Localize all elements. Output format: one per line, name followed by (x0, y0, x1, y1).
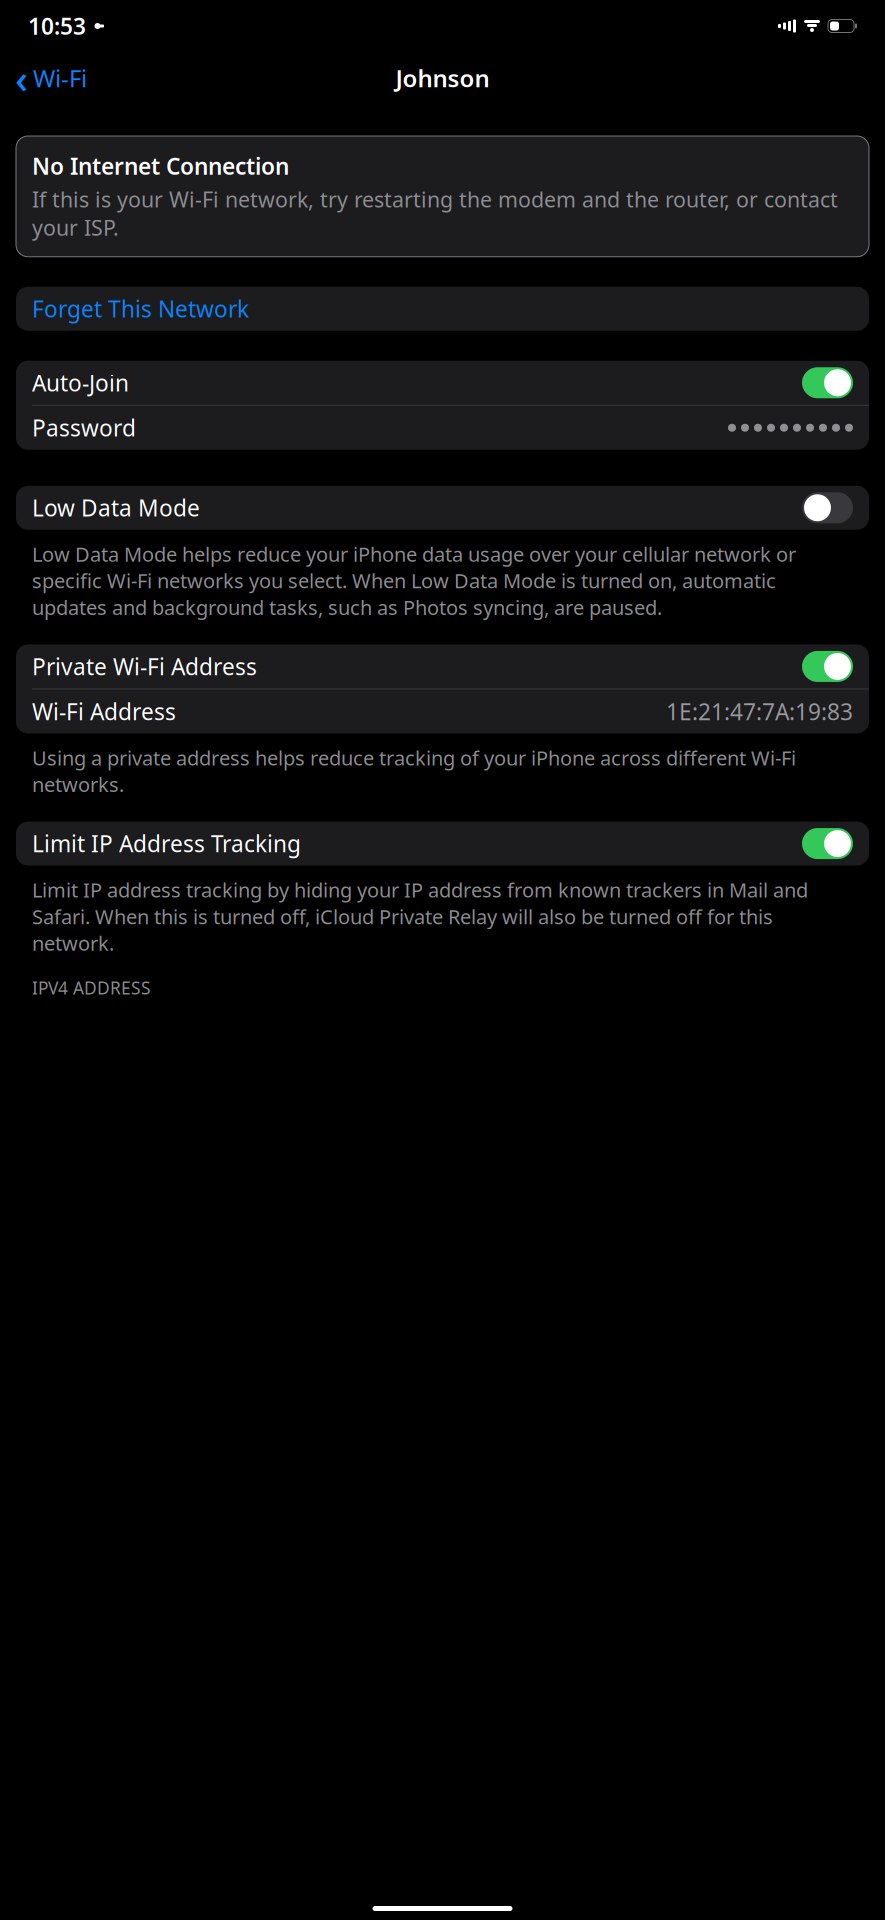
staticText: Forget This Network (32, 294, 249, 324)
staticText: Low Data Mode (32, 493, 200, 523)
staticText: Wi-Fi Address (32, 696, 176, 726)
staticText: Using a private address helps reduce tra… (32, 744, 796, 797)
button[interactable]: Private Wi-Fi Address (16, 644, 869, 688)
staticText: No Internet Connection (32, 151, 289, 181)
staticText: Wi-Fi (33, 62, 87, 94)
staticText: IPV4 ADDRESS (32, 976, 151, 999)
staticText: Limit IP address tracking by hiding your… (32, 877, 808, 956)
staticText: ‹ (15, 51, 28, 104)
button[interactable]: Auto-Join (16, 361, 869, 405)
button[interactable]: Forget This Network (16, 287, 869, 331)
staticText: 1E:21:47:7A:19:83 (666, 696, 853, 726)
staticText: Low Data Mode helps reduce your iPhone d… (32, 541, 796, 620)
staticText: 10:53 (28, 11, 86, 41)
staticText: If this is your Wi-Fi network, try resta… (32, 185, 838, 242)
staticText: Private Wi-Fi Address (32, 651, 257, 681)
staticText: Password (32, 413, 136, 443)
staticText: Limit IP Address Tracking (32, 828, 301, 859)
button[interactable]: Low Data Mode (16, 486, 869, 530)
button[interactable]: Limit IP Address Tracking (16, 822, 869, 866)
staticText: Johnson (395, 62, 489, 94)
button[interactable]: ‹ (10, 54, 93, 102)
staticText: Auto-Join (32, 368, 129, 398)
button[interactable]: Password (16, 406, 869, 450)
